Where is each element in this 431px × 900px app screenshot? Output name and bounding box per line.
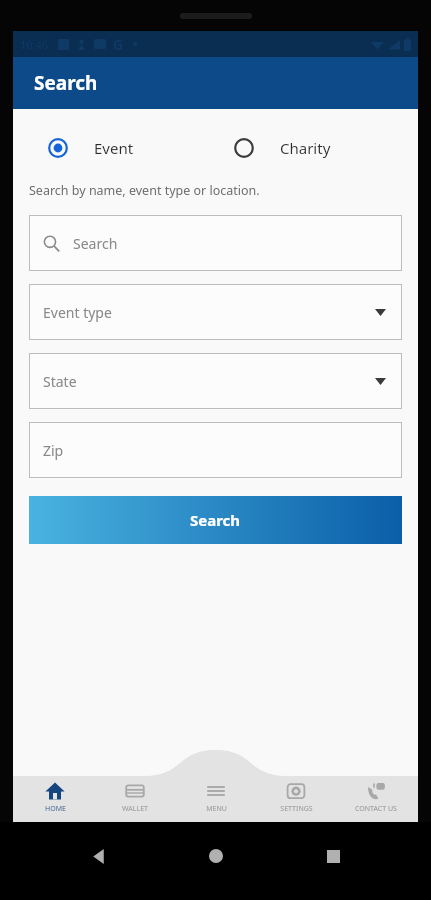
button[interactable]: Zip <box>29 422 402 478</box>
staticText: Event <box>94 138 134 158</box>
button[interactable]: Charity <box>215 134 402 162</box>
button[interactable]: State <box>29 353 402 409</box>
button[interactable]: Back <box>78 836 118 876</box>
staticText: Search <box>190 510 241 530</box>
staticText: Search by name, event type or location. <box>29 182 260 199</box>
button[interactable]: MENU <box>178 779 254 816</box>
button[interactable]: CONTACT US <box>338 779 414 816</box>
staticText: Charity <box>280 138 331 158</box>
button[interactable]: WALLET <box>97 779 173 816</box>
staticText: HOME <box>45 804 66 814</box>
staticText: State <box>43 372 77 391</box>
staticText: 10:46 <box>20 37 49 52</box>
button[interactable]: Event <box>29 134 215 162</box>
staticText: WALLET <box>122 804 148 814</box>
button[interactable]: Home <box>196 836 236 876</box>
button[interactable]: Recents <box>313 836 353 876</box>
staticText: Zip <box>43 441 64 460</box>
staticText: G <box>113 35 124 54</box>
button[interactable]: Search <box>29 496 402 544</box>
staticText: CONTACT US <box>355 804 397 814</box>
staticText: MENU <box>206 804 227 814</box>
staticText: Search <box>73 234 118 253</box>
button[interactable]: Search <box>29 215 402 271</box>
staticText: Search <box>34 70 98 96</box>
staticText: Event type <box>43 303 112 322</box>
button[interactable]: SETTINGS <box>258 779 334 816</box>
button[interactable]: HOME <box>17 779 93 816</box>
button[interactable]: Event type <box>29 284 402 340</box>
staticText: SETTINGS <box>280 804 313 814</box>
